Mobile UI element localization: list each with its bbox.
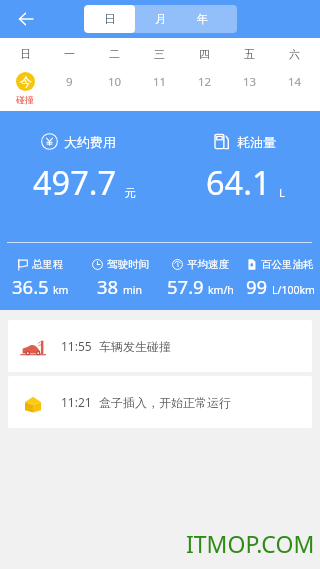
staticText: ITMOP.COM (186, 528, 315, 559)
staticText: 年 (197, 12, 209, 26)
staticText: 9 (66, 74, 73, 90)
staticText: L (279, 185, 285, 200)
button[interactable]: 日 (3, 38, 47, 111)
button[interactable]: 三 (137, 38, 182, 111)
staticText: 三 (154, 47, 165, 61)
staticText: 10 (108, 74, 122, 90)
staticText: 13 (243, 74, 257, 90)
staticText: min (123, 283, 143, 297)
staticText: 驾驶时间 (107, 258, 149, 271)
staticText: 日 (20, 47, 31, 61)
staticText: L/100km (272, 283, 315, 297)
button[interactable]: 月 (135, 5, 186, 33)
staticText: 57.9 (167, 274, 204, 299)
staticText: km (53, 283, 69, 297)
staticText: 14 (288, 74, 302, 90)
staticText: 五 (244, 47, 255, 61)
staticText: 99 (246, 274, 268, 299)
button[interactable]: 四 (182, 38, 227, 111)
staticText: 元 (125, 186, 136, 200)
staticText: 碰撞 (16, 94, 34, 105)
staticText: 总里程 (32, 258, 64, 271)
staticText: km/h (208, 283, 234, 297)
staticText: 64.1 (206, 160, 271, 204)
staticText: 11 (153, 74, 167, 90)
button[interactable]: 11:21 (8, 376, 312, 428)
staticText: 车辆发生碰撞 (99, 339, 171, 354)
staticText: 平均速度 (187, 258, 229, 271)
staticText: 12 (198, 74, 212, 90)
staticText: 大约费用 (64, 134, 116, 150)
staticText: 一 (64, 47, 75, 61)
staticText: 36.5 (12, 274, 49, 299)
button[interactable]: 六 (272, 38, 317, 111)
button[interactable]: 日 (84, 5, 135, 33)
staticText: 耗油量 (237, 134, 276, 150)
staticText: 497.7 (33, 160, 117, 204)
staticText: 六 (289, 47, 300, 61)
staticText: 38 (97, 274, 119, 299)
button[interactable]: 年 (186, 5, 237, 33)
staticText: 四 (199, 47, 210, 61)
staticText: 今 (20, 74, 32, 89)
staticText: 二 (109, 47, 120, 61)
staticText: 11:55 (61, 338, 92, 354)
staticText: 盒子插入，开始正常运行 (99, 395, 231, 410)
staticText: 日 (104, 12, 116, 26)
button[interactable]: 二 (92, 38, 137, 111)
staticText: 百公里油耗 (261, 258, 314, 271)
button[interactable]: 一 (47, 38, 92, 111)
button[interactable]: 11:55 (8, 320, 312, 372)
staticText: 11:21 (61, 394, 92, 410)
button[interactable]: Back (11, 4, 41, 34)
button[interactable]: 五 (227, 38, 272, 111)
staticText: 月 (155, 12, 167, 26)
